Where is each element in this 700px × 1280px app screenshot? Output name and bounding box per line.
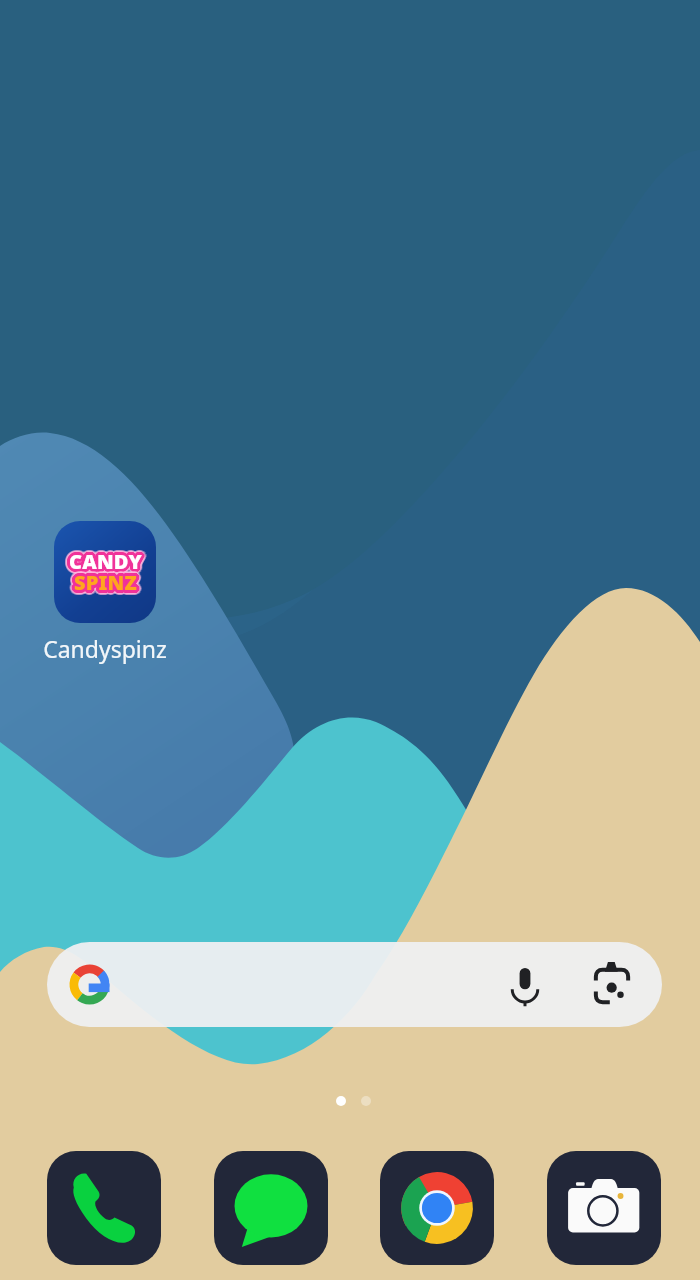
staticText: SPINZ — [75, 572, 138, 599]
staticText: SPINZ — [77, 569, 140, 596]
staticText: SPINZ — [71, 570, 134, 597]
staticText: SPINZ — [72, 566, 135, 593]
staticText: CANDY — [68, 549, 141, 576]
staticText: CANDY — [69, 546, 142, 573]
staticText: SPINZ — [75, 569, 138, 596]
staticText: SPINZ — [74, 571, 137, 598]
staticText: CANDY — [66, 546, 139, 573]
staticText: CANDY — [69, 545, 142, 572]
staticText: SPINZ — [78, 569, 141, 596]
staticText: CANDY — [66, 549, 139, 576]
button[interactable]: Voice search — [503, 962, 547, 1006]
staticText: SPINZ — [77, 570, 140, 597]
staticText: CANDY — [66, 548, 139, 575]
button[interactable]: Messages — [214, 1151, 328, 1265]
staticText: CANDY — [72, 551, 145, 578]
button[interactable]: Google — [69, 964, 110, 1005]
staticText: SPINZ — [75, 572, 138, 599]
staticText: CANDY — [67, 545, 140, 572]
staticText: SPINZ — [76, 572, 139, 599]
button[interactable]: Google Lens — [590, 962, 634, 1006]
button[interactable]: Phone — [47, 1151, 161, 1265]
staticText: SPINZ — [69, 568, 132, 595]
staticText: SPINZ — [75, 571, 138, 598]
staticText: CANDY — [70, 550, 143, 577]
staticText: CANDY — [72, 550, 145, 577]
staticText: CANDY — [70, 552, 143, 579]
staticText: SPINZ — [73, 571, 136, 598]
staticText: CANDY — [69, 544, 142, 571]
staticText: SPINZ — [77, 573, 140, 600]
staticText: SPINZ — [71, 567, 134, 594]
staticText: SPINZ — [79, 568, 142, 595]
staticText: SPINZ — [71, 565, 134, 592]
staticText: CANDY — [66, 545, 139, 572]
staticText: CANDY — [72, 549, 145, 576]
staticText: SPINZ — [73, 572, 136, 599]
staticText: CANDY — [74, 549, 147, 576]
staticText: CANDY — [70, 551, 143, 578]
button[interactable]: Camera — [547, 1151, 661, 1265]
button[interactable]: Page 2 — [361, 1096, 371, 1106]
staticText: SPINZ — [75, 574, 138, 601]
staticText: CANDY — [67, 548, 140, 575]
staticText: SPINZ — [72, 568, 135, 595]
button[interactable]: Chrome — [380, 1151, 494, 1265]
button[interactable]: Search — [47, 942, 662, 1027]
staticText: CANDY — [68, 551, 141, 578]
staticText: CANDY — [67, 552, 140, 579]
staticText: CANDY — [67, 544, 140, 571]
staticText: CANDY — [65, 545, 138, 572]
staticText: SPINZ — [74, 574, 137, 601]
staticText: SPINZ — [71, 569, 134, 596]
staticText: CANDY — [68, 547, 141, 574]
staticText: SPINZ — [74, 570, 137, 597]
staticText: CANDY — [69, 552, 142, 579]
staticText: SPINZ — [76, 570, 139, 597]
staticText: CANDY — [73, 551, 146, 578]
staticText: SPINZ — [75, 568, 138, 595]
staticText: CANDY — [66, 547, 139, 574]
staticText: SPINZ — [71, 571, 134, 598]
staticText: SPINZ — [72, 571, 135, 598]
staticText: CANDY — [65, 548, 138, 575]
staticText: SPINZ — [77, 568, 140, 595]
staticText: SPINZ — [69, 570, 132, 597]
staticText: SPINZ — [74, 566, 137, 593]
staticText: SPINZ — [73, 567, 136, 594]
staticText: SPINZ — [77, 568, 140, 595]
staticText: CANDY — [72, 547, 145, 574]
staticText: CANDY — [69, 551, 142, 578]
staticText: CANDY — [72, 549, 145, 576]
staticText: CANDY — [70, 545, 143, 572]
staticText: CANDY — [65, 549, 138, 576]
staticText: CANDY — [72, 552, 145, 579]
staticText: CANDY — [70, 546, 143, 573]
staticText: CANDY — [68, 553, 141, 580]
staticText: SPINZ — [75, 565, 138, 592]
staticText: SPINZ — [70, 568, 133, 595]
staticText: CANDY — [66, 547, 139, 574]
staticText: SPINZ — [77, 565, 140, 592]
staticText: SPINZ — [71, 573, 134, 600]
staticText: CANDY — [73, 545, 146, 572]
staticText: SPINZ — [78, 566, 141, 593]
staticText: SPINZ — [77, 570, 140, 597]
staticText: CANDY — [68, 552, 141, 579]
staticText: CANDY — [68, 551, 141, 578]
staticText: SPINZ — [74, 568, 137, 595]
staticText: SPINZ — [73, 568, 136, 595]
staticText: CANDY — [66, 549, 139, 576]
staticText: Candyspinz — [43, 633, 167, 664]
button[interactable]: CANDY — [15, 521, 195, 664]
button[interactable]: Page 1 — [336, 1096, 346, 1106]
staticText: SPINZ — [72, 569, 135, 596]
staticText: SPINZ — [76, 568, 139, 595]
staticText: SPINZ — [73, 566, 136, 593]
staticText: CANDY — [70, 547, 143, 574]
staticText: SPINZ — [73, 570, 136, 597]
staticText: SPINZ — [72, 573, 135, 600]
staticText: CANDY — [69, 548, 142, 575]
staticText: SPINZ — [73, 564, 136, 591]
staticText: CANDY — [72, 544, 145, 571]
